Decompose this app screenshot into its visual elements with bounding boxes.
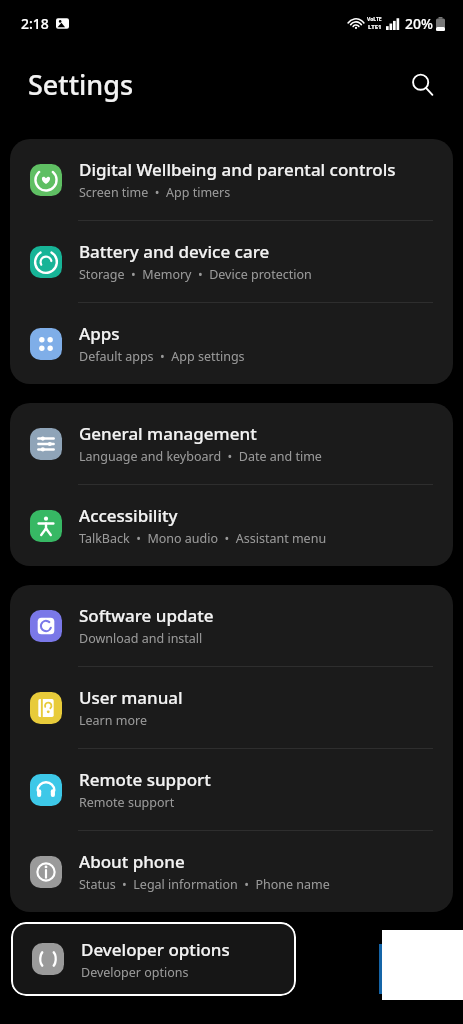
button[interactable]: Battery and device care xyxy=(10,221,453,302)
staticText: 20% xyxy=(405,14,433,33)
button[interactable]: General management xyxy=(10,403,453,484)
button[interactable]: Software update xyxy=(10,585,453,666)
staticText: Learn more xyxy=(79,712,147,729)
staticText: Default apps • App settings xyxy=(79,348,245,365)
staticText: Language and keyboard • Date and time xyxy=(79,448,322,465)
staticText: Status • Legal information • Phone name xyxy=(79,876,330,893)
staticText: Accessibility xyxy=(79,504,178,527)
staticText: Developer options xyxy=(81,938,230,961)
button[interactable]: Digital Wellbeing and parental controls xyxy=(10,139,453,220)
staticText: Digital Wellbeing and parental controls xyxy=(79,158,396,181)
staticText: TalkBack • Mono audio • Assistant menu xyxy=(79,530,327,547)
button[interactable]: Remote support xyxy=(10,749,453,830)
staticText: Developer options xyxy=(81,964,189,981)
button[interactable]: Search xyxy=(400,62,444,106)
staticText: Storage • Memory • Device protection xyxy=(79,266,312,283)
staticText: Remote support xyxy=(79,768,211,791)
button[interactable]: About phone xyxy=(10,831,453,912)
staticText: Remote support xyxy=(79,794,175,811)
button[interactable]: Apps xyxy=(10,303,453,384)
staticText: VoLTE xyxy=(367,16,382,23)
staticText: Settings xyxy=(28,66,134,103)
staticText: 2:18 xyxy=(21,14,49,33)
button[interactable]: Accessibility xyxy=(10,485,453,566)
staticText: General management xyxy=(79,422,257,445)
staticText: Screen time • App timers xyxy=(79,184,231,201)
staticText: LTE1 xyxy=(368,23,382,31)
staticText: Apps xyxy=(79,322,120,345)
staticText: User manual xyxy=(79,686,183,709)
staticText: Download and install xyxy=(79,630,203,647)
staticText: Battery and device care xyxy=(79,240,270,263)
staticText: About phone xyxy=(79,850,185,873)
button[interactable]: User manual xyxy=(10,667,453,748)
staticText: Software update xyxy=(79,604,214,627)
button[interactable]: Developer options xyxy=(11,922,296,996)
